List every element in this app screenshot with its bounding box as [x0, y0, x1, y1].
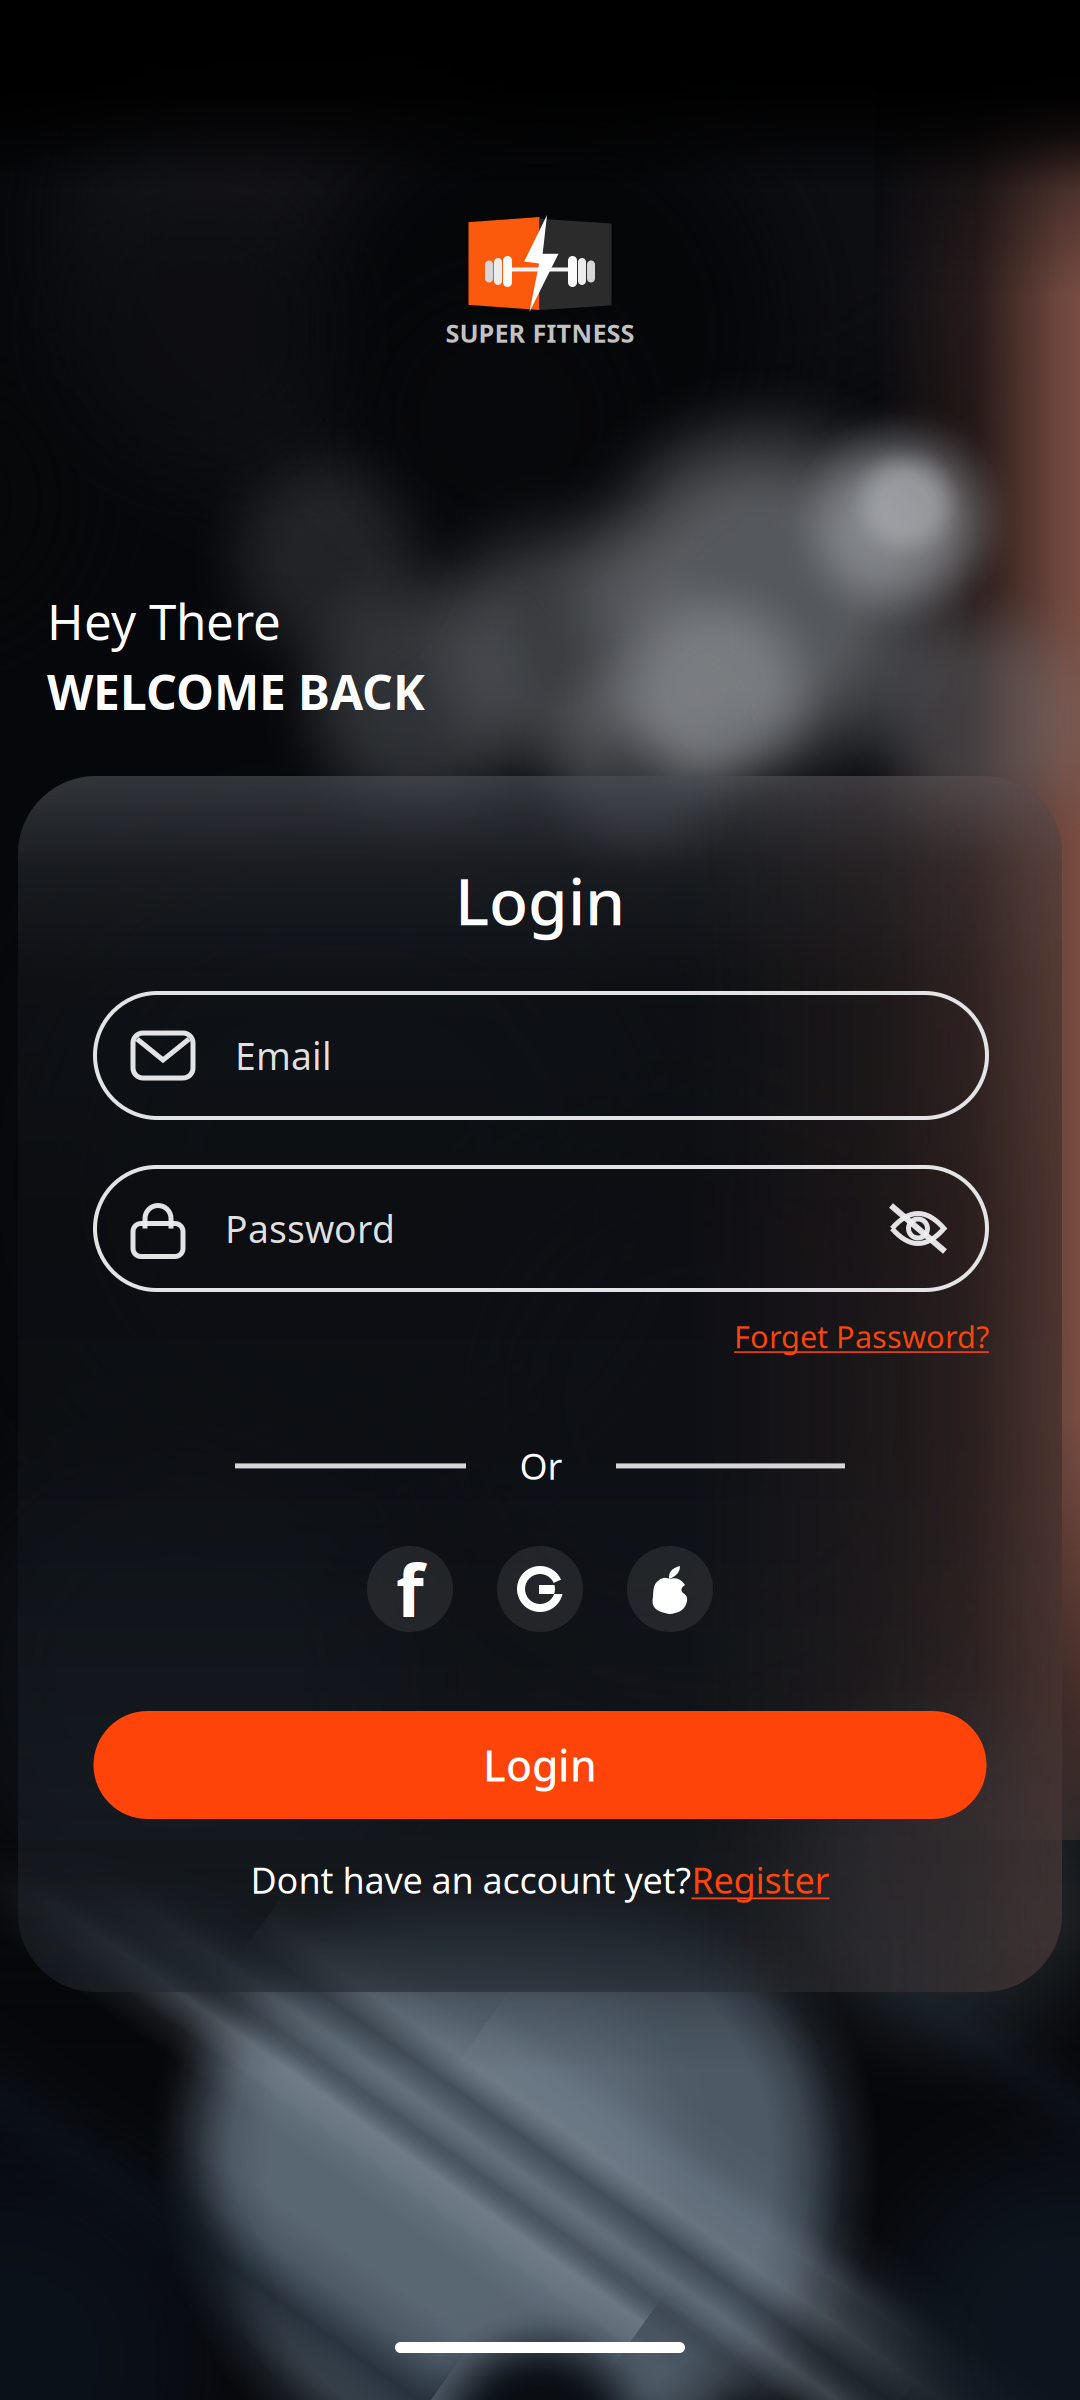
button[interactable]: Email	[95, 993, 987, 1118]
button[interactable]: Password	[95, 1167, 987, 1290]
button[interactable]: Forget Password?	[734, 1316, 989, 1357]
button[interactable]: Sign in with Google	[497, 1546, 583, 1632]
button[interactable]: Show password	[889, 1173, 987, 1283]
staticText: Password	[225, 1204, 395, 1253]
staticText: Hey There	[47, 588, 281, 653]
staticText: Register	[691, 1856, 829, 1904]
staticText: Login	[483, 1737, 597, 1793]
staticText: SUPER FITNESS	[445, 316, 634, 350]
staticText: Login	[455, 858, 625, 943]
staticText: Forget Password?	[734, 1316, 989, 1357]
staticText: Email	[235, 1031, 332, 1080]
button[interactable]: Sign in with Facebook	[367, 1546, 453, 1632]
staticText: f	[396, 1541, 424, 1637]
button[interactable]: Register	[691, 1856, 829, 1904]
staticText: WELCOME BACK	[47, 659, 425, 723]
staticText: Or	[519, 1442, 562, 1490]
button[interactable]: Sign in with Apple	[627, 1546, 713, 1632]
button[interactable]: Login	[93, 1711, 986, 1819]
staticText: Dont have an account yet?	[250, 1856, 691, 1904]
